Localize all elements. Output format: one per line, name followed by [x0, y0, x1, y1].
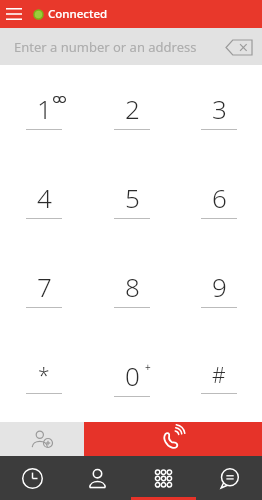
button[interactable]: Enter a number or an address: [0, 28, 262, 65]
button[interactable]: Menu: [0, 0, 28, 28]
staticText: 5: [125, 180, 140, 215]
staticText: *: [38, 361, 50, 390]
button[interactable]: 4: [0, 155, 88, 244]
button[interactable]: 5: [88, 155, 175, 244]
button[interactable]: Call: [84, 422, 262, 456]
staticText: 4: [37, 180, 52, 215]
staticText: Enter a number or an address: [14, 38, 197, 56]
button[interactable]: Recent: [0, 456, 65, 500]
button[interactable]: 1: [0, 65, 88, 155]
staticText: +: [145, 360, 151, 374]
button[interactable]: *: [0, 333, 88, 422]
button[interactable]: Messages: [196, 456, 262, 500]
button[interactable]: 3: [175, 65, 262, 155]
staticText: #: [212, 361, 226, 390]
staticText: 9: [212, 269, 227, 304]
staticText: 2: [125, 91, 140, 126]
button[interactable]: Dialpad: [130, 456, 196, 500]
button[interactable]: 7: [0, 244, 88, 333]
button[interactable]: 6: [175, 155, 262, 244]
button[interactable]: 0: [88, 333, 175, 422]
staticText: 0: [125, 358, 140, 393]
button[interactable]: Contacts: [65, 456, 130, 500]
staticText: 8: [125, 269, 140, 304]
button[interactable]: 2: [88, 65, 175, 155]
button[interactable]: Add contact: [0, 422, 84, 456]
button[interactable]: 8: [88, 244, 175, 333]
staticText: 1: [37, 91, 52, 126]
staticText: Connected: [48, 6, 108, 22]
staticText: 6: [212, 180, 227, 215]
staticText: 7: [37, 269, 52, 304]
button[interactable]: #: [175, 333, 262, 422]
button[interactable]: 9: [175, 244, 262, 333]
staticText: 3: [212, 91, 227, 126]
button[interactable]: Backspace: [224, 35, 254, 59]
